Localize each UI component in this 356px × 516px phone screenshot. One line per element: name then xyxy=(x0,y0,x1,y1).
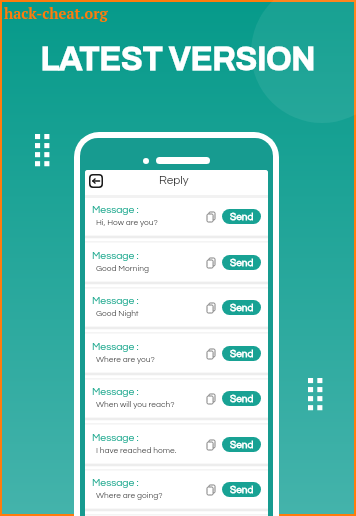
staticText: Send xyxy=(230,485,254,495)
staticText: Send xyxy=(230,258,254,268)
staticText: Send xyxy=(230,440,254,450)
button[interactable]: Copy xyxy=(207,440,215,450)
staticText: Hi, How are you? xyxy=(96,218,158,227)
button[interactable]: Copy xyxy=(207,303,215,313)
button[interactable]: Send xyxy=(222,346,261,361)
button[interactable]: Copy xyxy=(207,349,215,359)
button[interactable]: Copy xyxy=(207,212,215,222)
button[interactable]: Message : xyxy=(85,198,268,236)
button[interactable]: Copy xyxy=(207,258,215,268)
staticText: Send xyxy=(230,349,254,359)
staticText: Good Morning xyxy=(96,264,149,273)
staticText: Where are you? xyxy=(96,355,155,364)
button[interactable]: Send xyxy=(222,482,261,497)
staticText: Where are going? xyxy=(96,491,163,500)
button[interactable]: Copy xyxy=(207,394,215,404)
button[interactable]: Message : xyxy=(85,380,268,418)
staticText: Send xyxy=(230,394,254,404)
button[interactable]: Send xyxy=(222,437,261,452)
staticText: Message : xyxy=(92,250,139,261)
staticText: Message : xyxy=(92,204,139,215)
staticText: When will you reach? xyxy=(96,400,175,409)
staticText: I have reached home. xyxy=(96,446,177,455)
button[interactable]: Message : xyxy=(85,244,268,282)
staticText: Message : xyxy=(92,432,139,443)
button[interactable]: Message : xyxy=(85,335,268,373)
staticText: Send xyxy=(230,303,254,313)
button[interactable]: Message : xyxy=(85,426,268,464)
button[interactable]: Message : xyxy=(85,471,268,509)
staticText: Message : xyxy=(92,477,139,488)
staticText: LATEST VERSION xyxy=(2,42,354,77)
staticText: Message : xyxy=(92,295,139,306)
staticText: Send xyxy=(230,212,254,222)
staticText: Message : xyxy=(92,386,139,397)
button[interactable]: Send xyxy=(222,300,261,315)
staticText: Good Night xyxy=(96,309,139,318)
staticText: Message : xyxy=(92,341,139,352)
button[interactable]: Copy xyxy=(207,485,215,495)
button[interactable]: Send xyxy=(222,209,261,224)
button[interactable]: Back xyxy=(89,174,103,188)
staticText: Reply xyxy=(159,174,189,186)
button[interactable]: Send xyxy=(222,391,261,406)
button[interactable]: Send xyxy=(222,255,261,270)
button[interactable]: Message : xyxy=(85,289,268,327)
staticText: hack-cheat.org xyxy=(4,4,108,23)
